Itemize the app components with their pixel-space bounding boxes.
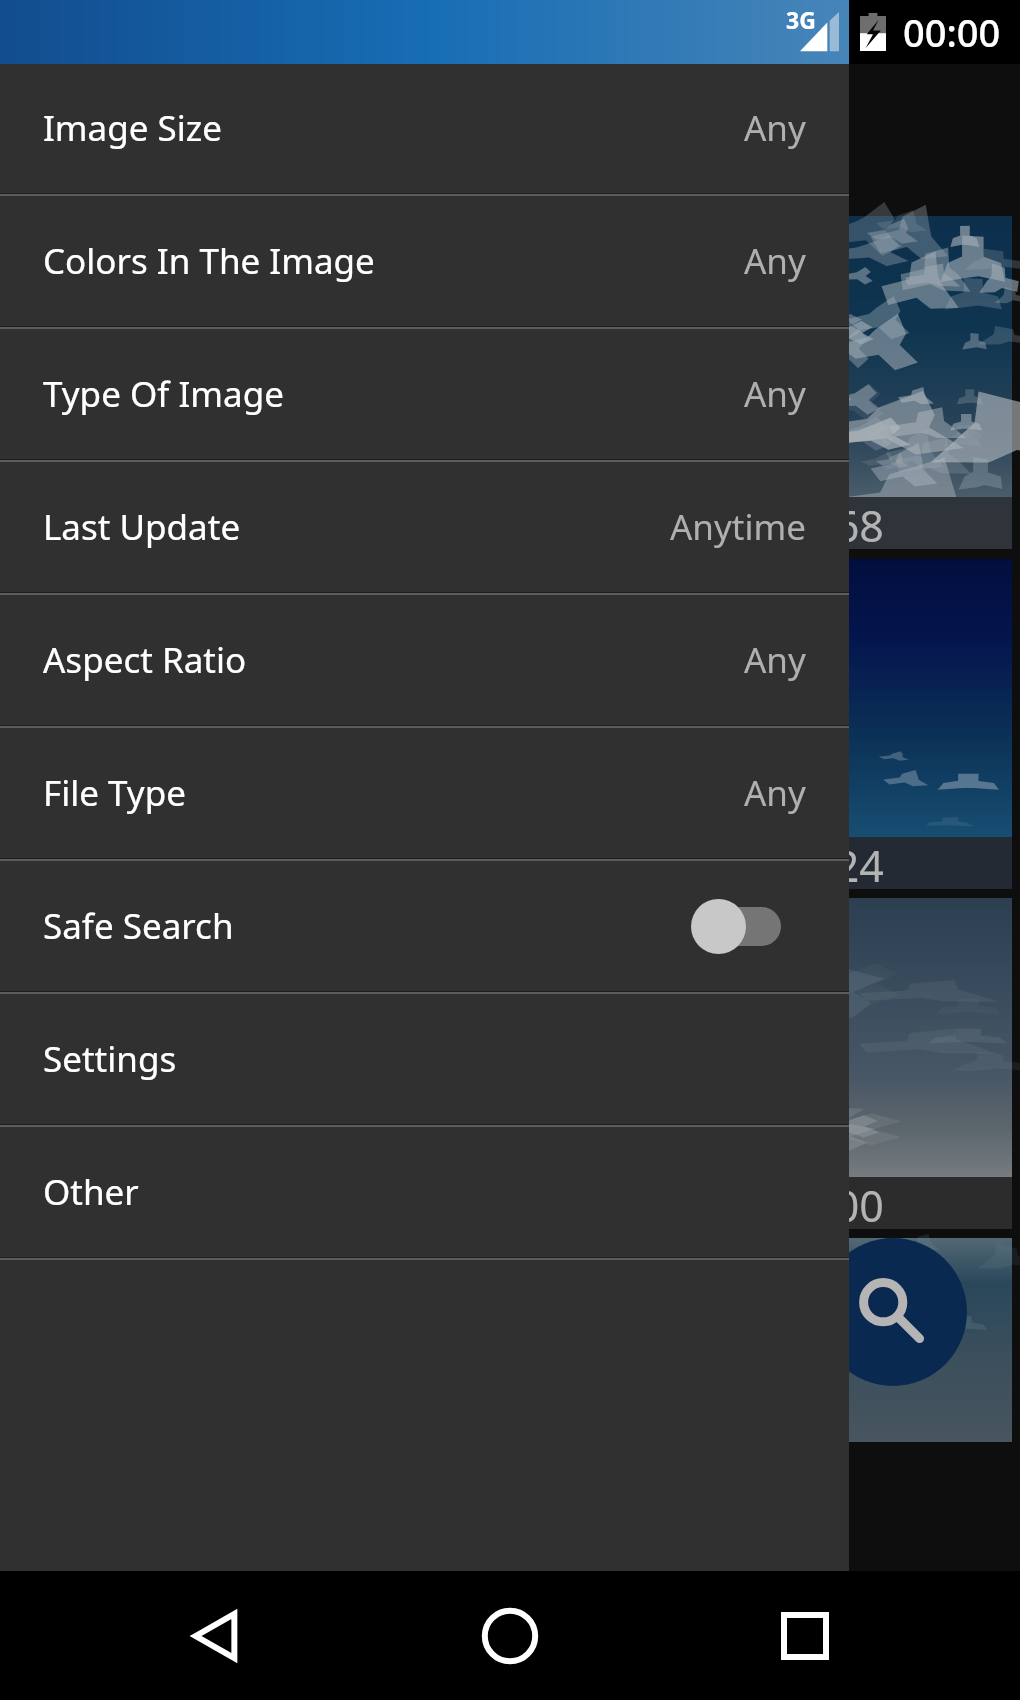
staticText: Any (744, 237, 806, 285)
button[interactable] (0, 1238, 1012, 1442)
staticText: Settings (43, 1035, 177, 1083)
staticText: 1,568 (774, 496, 884, 548)
staticText: Any (744, 636, 806, 684)
button[interactable]: Last Update (0, 462, 849, 595)
button[interactable]: Search (819, 1238, 967, 1386)
staticText: 2,700 (774, 1176, 884, 1228)
button[interactable]: Settings (0, 994, 849, 1127)
staticText: Any (744, 104, 806, 152)
staticText: 3G (786, 4, 816, 35)
staticText: Safe Search (43, 902, 234, 950)
button[interactable]: Home (450, 1576, 570, 1696)
staticText: Any (744, 769, 806, 817)
button[interactable]: Other (0, 1127, 849, 1260)
staticText: Colors In The Image (43, 237, 375, 285)
button[interactable]: Type Of Image (0, 329, 849, 462)
button[interactable]: Colors In The Image (0, 196, 849, 329)
button[interactable]: Image Size (0, 63, 849, 196)
staticText: Last Update (43, 503, 241, 551)
staticText: Type Of Image (43, 370, 284, 418)
button[interactable]: Safe Search (0, 861, 849, 994)
button[interactable]: File Type (0, 728, 849, 861)
button[interactable]: Back (165, 1576, 285, 1696)
button[interactable]: Recent apps (735, 1576, 855, 1696)
staticText: Image Size (43, 104, 223, 152)
staticText: 00:00 (903, 6, 1001, 58)
staticText: File Type (43, 769, 186, 817)
button[interactable]: 1,568 (0, 216, 1012, 549)
staticText: Anytime (670, 503, 806, 551)
button[interactable]: 2,700 (0, 898, 1012, 1229)
staticText: Other (43, 1168, 139, 1216)
button[interactable]: Aspect Ratio (0, 595, 849, 728)
button[interactable]: 4,824 (0, 559, 1012, 889)
staticText: Aspect Ratio (43, 636, 247, 684)
staticText: 4,824 (774, 836, 884, 888)
staticText: Any (744, 370, 806, 418)
